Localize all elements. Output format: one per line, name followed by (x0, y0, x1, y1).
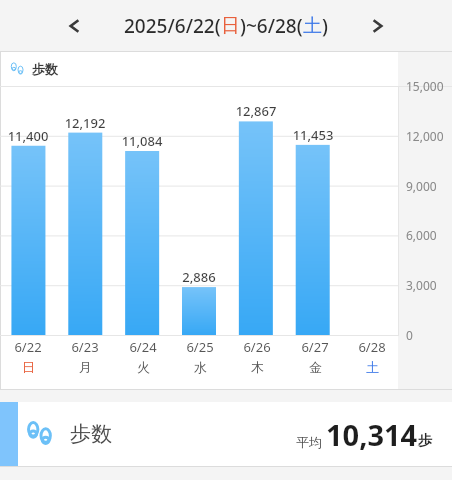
staticText: 15,000 (406, 78, 444, 94)
staticText: 日 (221, 14, 240, 38)
button[interactable]: 6/22 (4, 338, 52, 375)
button[interactable]: 歩数 (0, 402, 452, 466)
staticText: ) (322, 13, 328, 39)
staticText: 日 (22, 359, 35, 375)
button[interactable]: 6/24 (119, 338, 167, 375)
staticText: 平均 (296, 434, 322, 450)
staticText: 12,000 (406, 128, 444, 144)
staticText: 12,867 (230, 102, 282, 120)
staticText: 水 (194, 359, 207, 375)
staticText: 9,000 (406, 178, 437, 194)
staticText: 3,000 (406, 277, 437, 293)
staticText: 11,084 (116, 132, 168, 150)
staticText: 11,400 (2, 127, 54, 145)
staticText: 6/22 (14, 338, 42, 356)
staticText: )~6/28( (240, 13, 303, 39)
staticText: 6/28 (358, 338, 386, 356)
staticText: 歩数 (32, 61, 58, 77)
staticText: 6/24 (129, 338, 157, 356)
staticText: 11,453 (287, 126, 339, 144)
staticText: 0 (406, 327, 413, 343)
staticText: 12,192 (59, 114, 111, 132)
staticText: 土 (366, 359, 379, 375)
staticText: 10,314 (326, 415, 418, 454)
button[interactable]: Next week (356, 4, 400, 48)
button[interactable]: 6/23 (61, 338, 109, 375)
staticText: 土 (303, 14, 322, 38)
staticText: 火 (137, 359, 150, 375)
staticText: 金 (309, 359, 322, 375)
button[interactable]: 6/26 (233, 338, 281, 375)
button[interactable]: 6/27 (291, 338, 339, 375)
staticText: 6/26 (243, 338, 271, 356)
staticText: 6/25 (186, 338, 214, 356)
staticText: 2025/6/22( (124, 13, 221, 39)
staticText: 6/23 (71, 338, 99, 356)
staticText: 6,000 (406, 227, 437, 243)
staticText: 6/27 (301, 338, 329, 356)
button[interactable]: Previous week (52, 4, 96, 48)
staticText: 木 (251, 359, 264, 375)
button[interactable]: 歩数 (11, 61, 58, 77)
staticText: 月 (79, 359, 92, 375)
button[interactable]: 6/25 (176, 338, 224, 375)
button[interactable]: 6/28 (348, 338, 396, 375)
staticText: 2,886 (173, 268, 225, 286)
staticText: 歩数 (70, 421, 112, 447)
staticText: 歩 (418, 432, 432, 450)
